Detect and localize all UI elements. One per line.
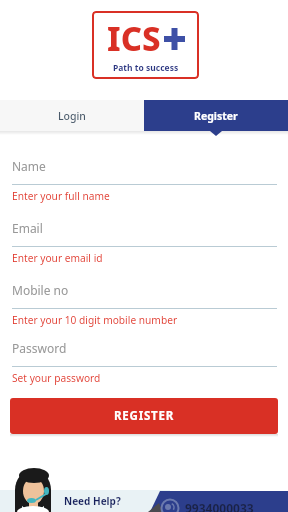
staticText: Register <box>194 109 238 123</box>
staticText: Set your password <box>12 371 101 385</box>
button[interactable] <box>146 490 288 512</box>
staticText: Password <box>12 340 67 356</box>
staticText: Enter your 10 digit mobile number <box>12 313 178 327</box>
staticText: Enter your email id <box>12 251 103 265</box>
button[interactable]: Password <box>12 340 277 385</box>
button[interactable]: Register <box>144 100 288 131</box>
staticText: Name <box>12 158 46 174</box>
staticText: Login <box>58 109 86 123</box>
staticText: Need Help? <box>64 494 121 508</box>
button[interactable]: Name <box>12 158 277 203</box>
button[interactable]: Mobile no <box>12 282 277 327</box>
staticText: 9934000033 <box>185 500 254 512</box>
staticText: Enter your full name <box>12 189 110 203</box>
staticText: ICS <box>107 16 161 61</box>
button[interactable]: Email <box>12 220 277 265</box>
staticText: Mobile no <box>12 282 69 298</box>
staticText: REGISTER <box>114 408 175 424</box>
staticText: Email <box>12 220 43 236</box>
staticText: Path to success <box>113 62 179 74</box>
button[interactable]: Login <box>0 100 144 131</box>
button[interactable]: REGISTER <box>10 398 278 434</box>
